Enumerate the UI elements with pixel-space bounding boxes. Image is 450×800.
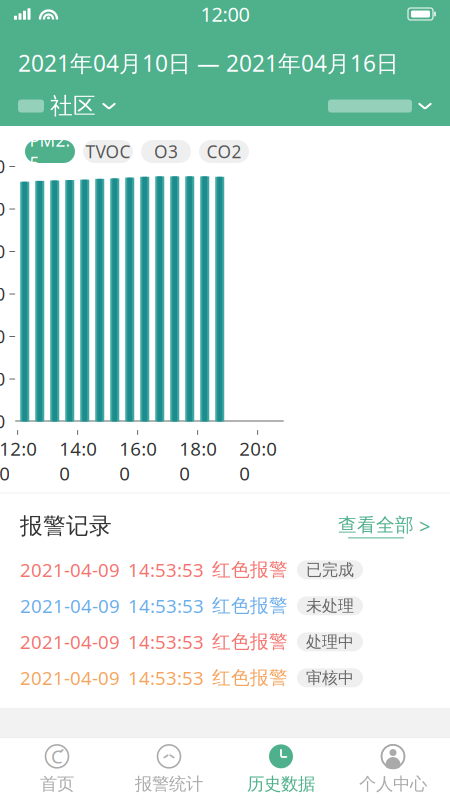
button[interactable]: 查看全部 <box>338 513 430 539</box>
staticText: 未处理 <box>306 596 354 616</box>
staticText: 报警统计 <box>135 773 203 795</box>
staticText: 红色报警 <box>212 594 288 617</box>
staticText: 2021-04-09 <box>20 665 120 690</box>
staticText: 报警记录 <box>20 512 112 540</box>
button[interactable]: 报警统计 <box>113 739 225 799</box>
button[interactable]: O3 <box>141 140 191 163</box>
staticText: 40 <box>0 240 5 263</box>
staticText: 0 <box>0 410 5 433</box>
staticText: 红色报警 <box>212 630 288 653</box>
staticText: PM2.5 <box>29 128 70 174</box>
staticText: 20 <box>0 325 5 348</box>
button[interactable]: CO2 <box>199 140 249 163</box>
staticText: 14:00 <box>59 436 97 486</box>
staticText: 12:00 <box>200 1 249 27</box>
staticText: 10 <box>0 367 5 390</box>
staticText: 红色报警 <box>212 558 288 581</box>
staticText: 历史数据 <box>247 773 315 795</box>
staticText: O3 <box>154 140 178 163</box>
staticText: 16:00 <box>119 436 157 486</box>
staticText: C <box>51 744 63 769</box>
staticText: 2021-04-09 <box>20 593 120 618</box>
staticText: 60 <box>0 155 5 178</box>
button[interactable]: C <box>1 739 113 799</box>
staticText: 14:53:53 <box>128 629 204 654</box>
staticText: 2021-04-09 <box>20 557 120 582</box>
staticText: 18:00 <box>179 436 217 486</box>
staticText: 审核中 <box>306 668 354 688</box>
button[interactable] <box>328 99 432 112</box>
staticText: 14:53:53 <box>128 665 204 690</box>
staticText: 2021年04月10日 — 2021年04月16日 <box>18 48 399 78</box>
button[interactable]: 个人中心 <box>337 739 449 799</box>
button[interactable]: 2021-04-09 <box>0 660 450 696</box>
staticText: 14:53:53 <box>128 593 204 618</box>
staticText: 红色报警 <box>212 666 288 689</box>
button[interactable]: 2021-04-09 <box>0 624 450 660</box>
staticText: 2021-04-09 <box>20 629 120 654</box>
button[interactable]: 2021-04-09 <box>0 552 450 588</box>
staticText: > <box>419 513 430 539</box>
button[interactable]: TVOC <box>83 140 133 163</box>
button[interactable]: 2021-04-09 <box>0 588 450 624</box>
button[interactable]: PM2.5 <box>25 140 75 163</box>
staticText: 14:53:53 <box>128 557 204 582</box>
staticText: 12:00 <box>0 436 37 486</box>
staticText: CO2 <box>206 140 241 163</box>
staticText: TVOC <box>85 140 130 163</box>
staticText: 个人中心 <box>359 773 427 795</box>
staticText: 查看全部 <box>338 513 414 536</box>
button[interactable]: 社区 <box>18 92 116 120</box>
staticText: 社区 <box>50 92 96 120</box>
staticText: 30 <box>0 282 5 305</box>
staticText: 50 <box>0 197 5 220</box>
staticText: 已完成 <box>306 560 354 580</box>
staticText: 处理中 <box>306 632 354 652</box>
button[interactable]: 历史数据 <box>225 739 337 799</box>
staticText: 首页 <box>40 773 74 795</box>
staticText: 20:00 <box>239 436 277 486</box>
